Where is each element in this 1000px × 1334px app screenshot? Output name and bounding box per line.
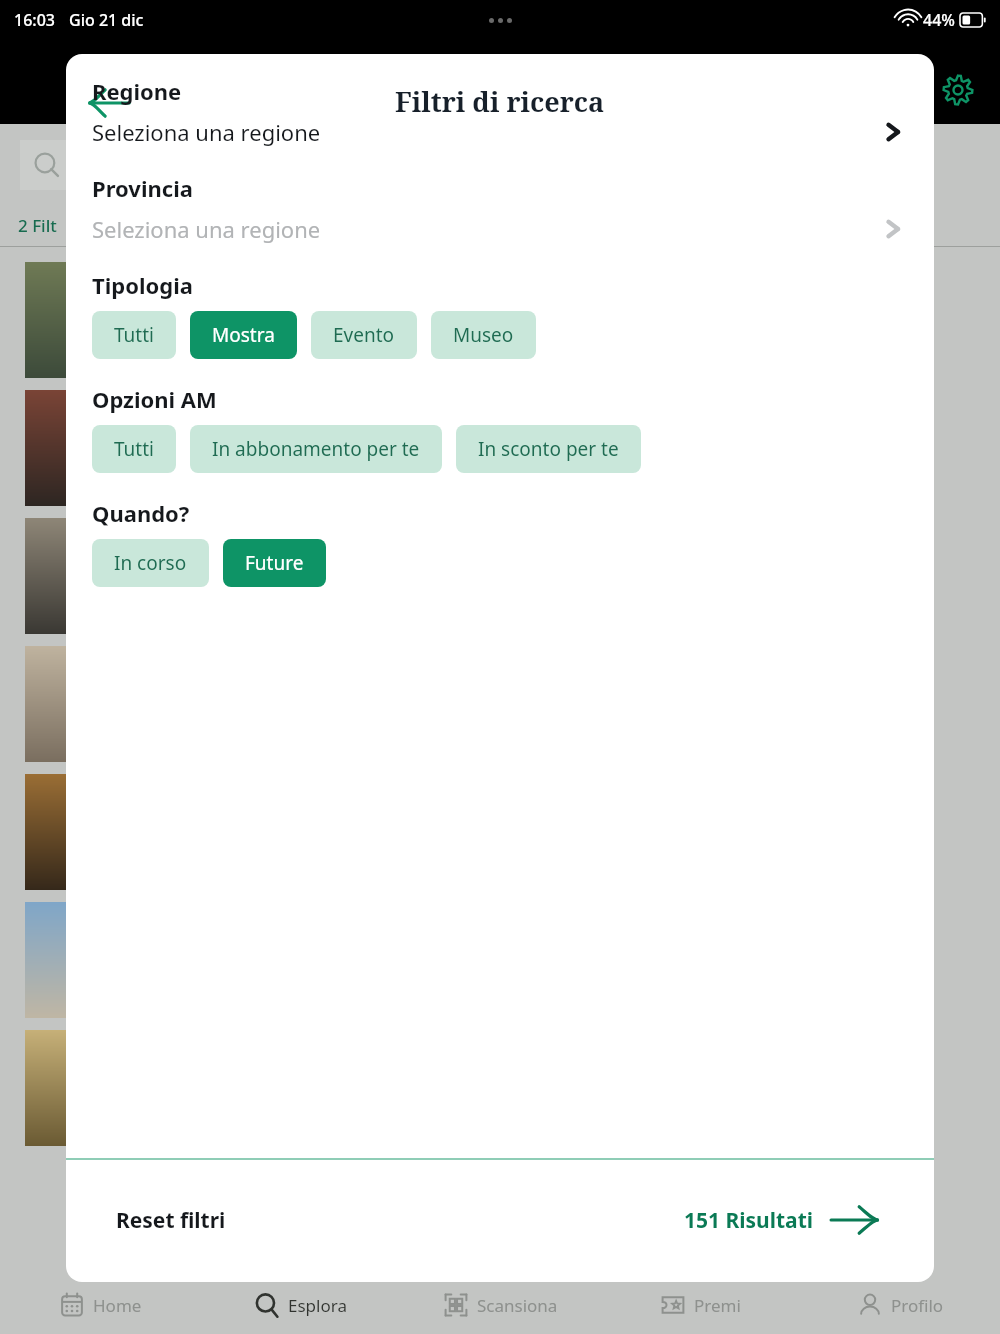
staticText: Provincia — [92, 173, 193, 203]
button[interactable]: Scansiona — [400, 1276, 600, 1334]
button[interactable]: Future — [223, 539, 326, 587]
staticText: 16:03 — [14, 9, 55, 31]
button[interactable]: Seleziona una regione — [92, 203, 908, 248]
staticText: Tutti — [114, 322, 154, 348]
button[interactable]: Museo — [431, 311, 536, 359]
staticText: Quando? — [92, 498, 190, 528]
staticText: Profilo — [891, 1294, 944, 1317]
button[interactable]: Home — [0, 1276, 200, 1334]
staticText: In abbonamento per te — [212, 436, 420, 462]
button[interactable]: Reset filtri — [114, 1196, 228, 1245]
staticText: Evento — [333, 322, 395, 348]
button[interactable]: Tutti — [92, 425, 176, 473]
staticText: Mostra — [212, 322, 275, 348]
staticText: Seleziona una regione — [92, 214, 321, 244]
button[interactable]: Profilo — [800, 1276, 1000, 1334]
button[interactable]: Esplora — [200, 1276, 400, 1334]
button[interactable]: Evento — [311, 311, 417, 359]
staticText: 151 Risultati — [684, 1206, 814, 1235]
staticText: Opzioni AM — [92, 384, 217, 414]
staticText: 44% — [923, 9, 955, 31]
staticText: In corso — [114, 550, 187, 576]
staticText: Premi — [694, 1294, 741, 1317]
button[interactable]: Premi — [600, 1276, 800, 1334]
staticText: 2 Filt — [18, 214, 57, 237]
staticText: Tipologia — [92, 270, 193, 300]
staticText: Seleziona una regione — [92, 117, 321, 147]
staticText: Home — [93, 1294, 142, 1317]
staticText: Reset filtri — [116, 1206, 226, 1235]
staticText: Tutti — [114, 436, 154, 462]
staticText: Gio 21 dic — [69, 9, 144, 31]
staticText: Scansiona — [477, 1294, 558, 1317]
staticText: Regione — [92, 76, 182, 106]
button[interactable]: Tutti — [92, 311, 176, 359]
staticText: Filtri di ricerca — [395, 83, 605, 120]
button[interactable]: 151 Risultati — [682, 1195, 886, 1245]
staticText: Future — [245, 550, 304, 576]
button[interactable]: Indietro — [80, 76, 134, 130]
staticText: In sconto per te — [478, 436, 619, 462]
button[interactable]: In abbonamento per te — [190, 425, 442, 473]
staticText: Museo — [453, 322, 514, 348]
button[interactable]: Mostra — [190, 311, 297, 359]
button[interactable]: In sconto per te — [456, 425, 641, 473]
button[interactable]: Seleziona una regione — [92, 106, 908, 151]
button[interactable]: In corso — [92, 539, 209, 587]
button[interactable] — [20, 140, 140, 190]
button[interactable]: Impostazioni — [930, 62, 986, 118]
staticText: Esplora — [288, 1294, 347, 1317]
